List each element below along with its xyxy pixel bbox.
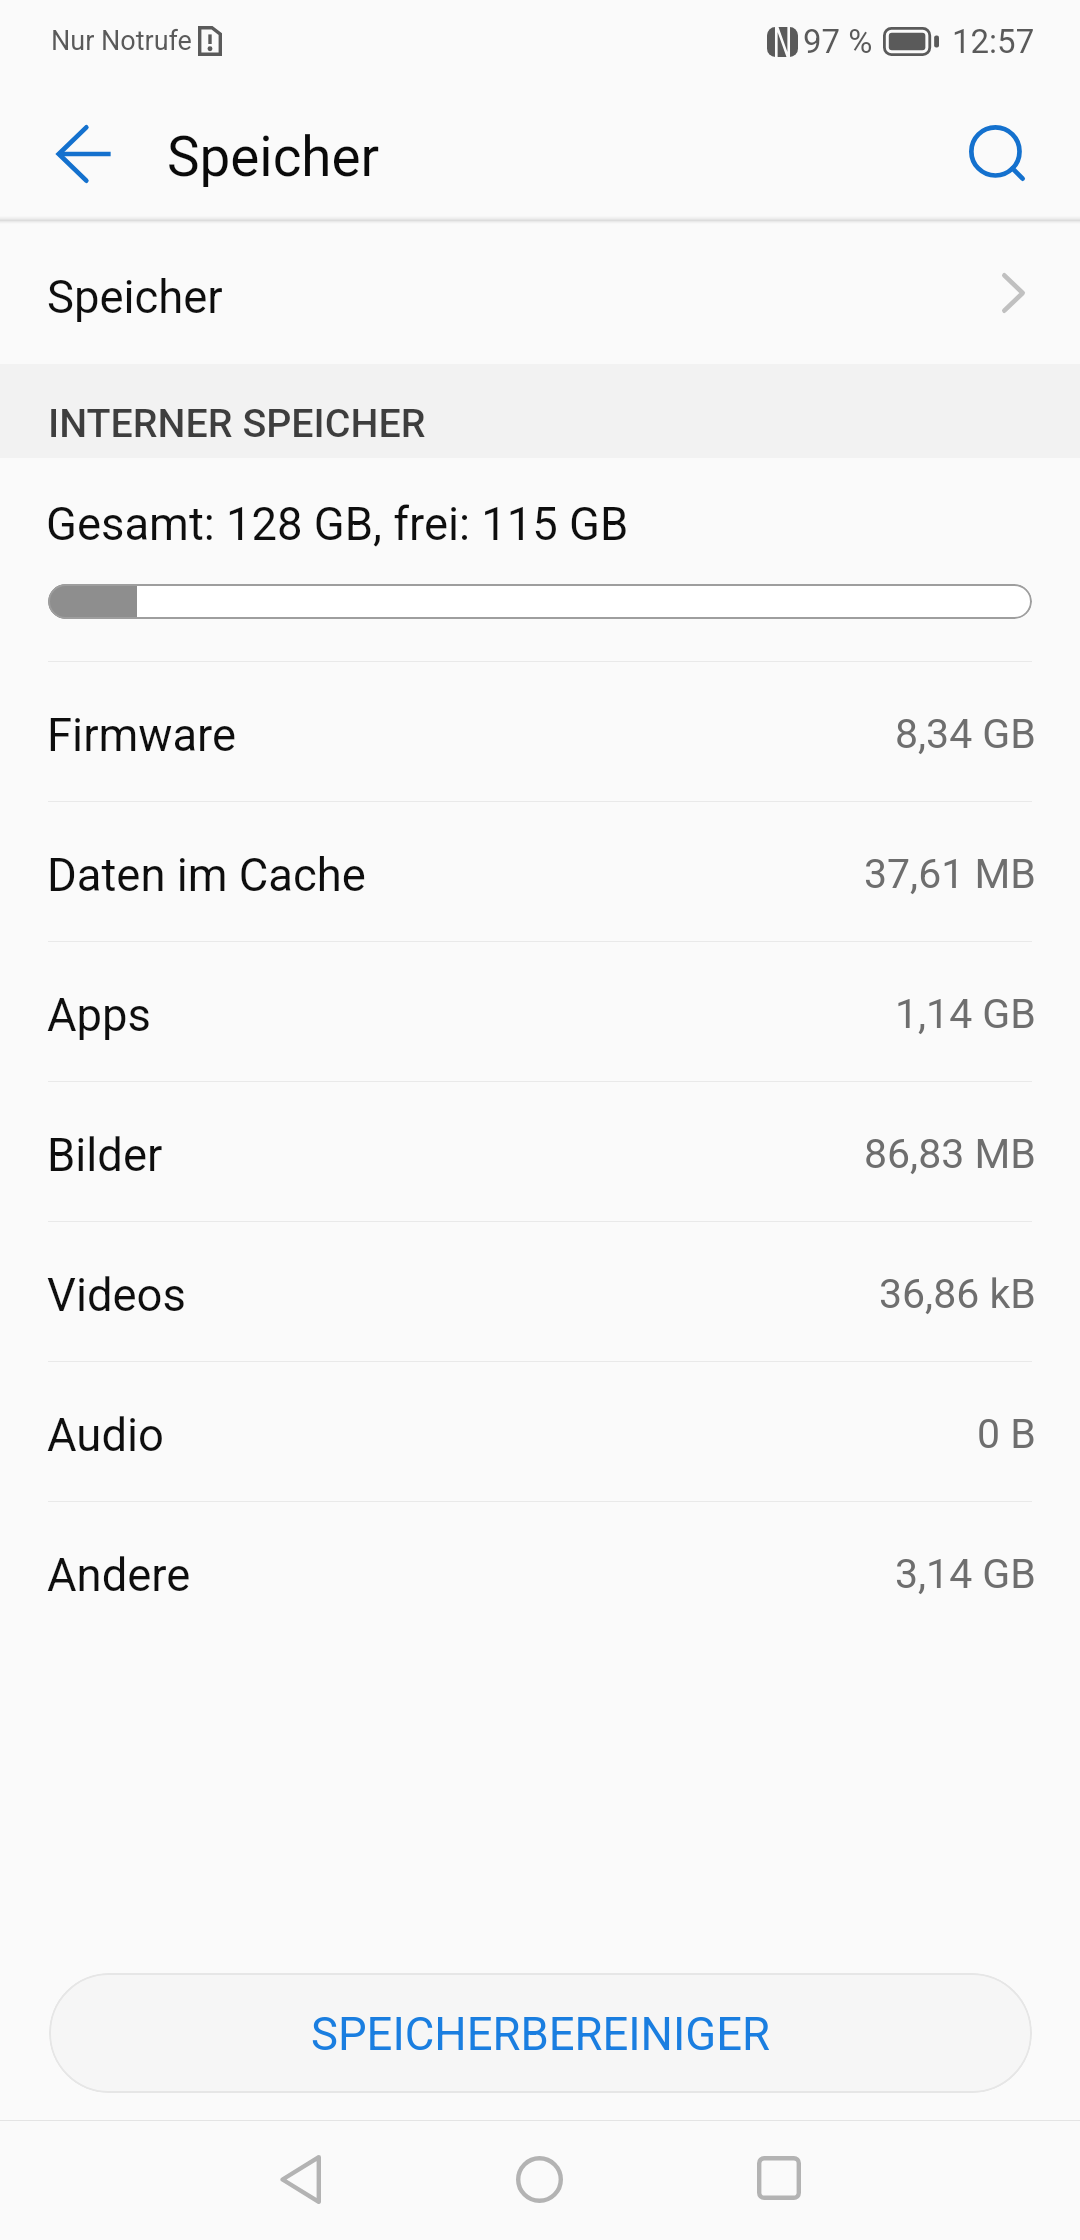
staticText: 97 % (803, 22, 873, 61)
button[interactable]: Home (479, 2120, 599, 2239)
staticText: SPEICHERBEREINIGER (311, 2008, 771, 2061)
staticText: Apps (47, 989, 152, 1042)
staticText: Speicher (167, 125, 380, 189)
staticText: 86,83 MB (864, 1130, 1036, 1178)
button[interactable]: Bilder (0, 1082, 1080, 1221)
staticText: 1,14 GB (895, 990, 1036, 1038)
button[interactable]: Daten im Cache (0, 802, 1080, 941)
button[interactable]: Back (30, 100, 138, 208)
button[interactable]: Recent apps (719, 2118, 839, 2237)
button[interactable]: SPEICHERBEREINIGER (49, 1973, 1032, 2093)
button[interactable]: Speicher (0, 222, 1080, 364)
staticText: Videos (47, 1269, 186, 1322)
button[interactable]: Videos (0, 1222, 1080, 1361)
staticText: Speicher (47, 271, 223, 324)
staticText: 36,86 kB (879, 1270, 1036, 1318)
button[interactable]: Search (943, 99, 1051, 207)
staticText: INTERNER SPEICHER (48, 400, 426, 446)
button[interactable]: Back (240, 2120, 360, 2239)
button[interactable]: Apps (0, 942, 1080, 1081)
staticText: Nur Notrufe (51, 25, 192, 57)
staticText: Daten im Cache (47, 849, 366, 902)
staticText: 8,34 GB (895, 710, 1036, 758)
staticText: 3,14 GB (895, 1550, 1036, 1598)
staticText: 0 B (977, 1410, 1036, 1458)
staticText: Firmware (47, 709, 237, 762)
staticText: Gesamt: 128 GB, frei: 115 GB (46, 498, 629, 551)
staticText: 37,61 MB (864, 850, 1036, 898)
staticText: Audio (47, 1409, 164, 1462)
staticText: Bilder (47, 1129, 163, 1182)
button[interactable]: Andere (0, 1502, 1080, 1641)
staticText: 12:57 (952, 22, 1035, 61)
button[interactable]: Firmware (0, 662, 1080, 801)
button[interactable]: Audio (0, 1362, 1080, 1501)
staticText: Andere (47, 1549, 191, 1602)
